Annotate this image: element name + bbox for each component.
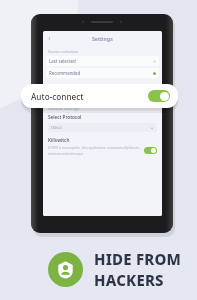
staticText: IKEv2 xyxy=(51,125,62,131)
button[interactable]: Toggle on xyxy=(144,147,157,154)
button[interactable]: Toggle on xyxy=(148,90,170,102)
staticText: If VPN is incomplete, this application a… xyxy=(48,145,140,150)
button[interactable]: Back xyxy=(47,36,52,41)
button[interactable]: IKEv2 xyxy=(48,123,157,132)
staticText: General settings xyxy=(48,106,80,111)
button[interactable]: If VPN is incomplete, this application a… xyxy=(48,145,157,156)
staticText: HIDE FROM xyxy=(94,249,182,269)
staticText: HACKERS xyxy=(94,270,164,290)
staticText: internet and intercept xyxy=(48,151,83,156)
button[interactable]: Recommended xyxy=(46,68,159,78)
staticText: Settings xyxy=(92,35,113,42)
staticText: Server selection xyxy=(48,49,79,54)
button[interactable]: Auto-connect xyxy=(21,84,178,108)
staticText: Recommended xyxy=(49,70,81,76)
button[interactable]: Last selected xyxy=(46,56,159,66)
staticText: Select Protocol xyxy=(48,114,82,120)
staticText: Last selected xyxy=(49,58,76,64)
staticText: Auto-connect xyxy=(31,91,84,102)
staticText: Killswitch xyxy=(48,137,70,143)
button[interactable]: Hide from hackers xyxy=(48,252,83,287)
